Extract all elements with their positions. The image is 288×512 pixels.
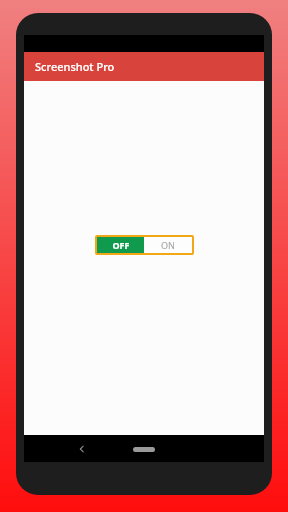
button[interactable]: Back — [70, 437, 94, 461]
staticText: ON — [161, 239, 175, 251]
staticText: OFF — [112, 239, 130, 251]
staticText: Screenshot Pro — [35, 59, 115, 74]
button[interactable]: OFF — [97, 237, 144, 253]
button[interactable]: Home — [127, 441, 161, 457]
button[interactable]: ON — [144, 237, 192, 253]
